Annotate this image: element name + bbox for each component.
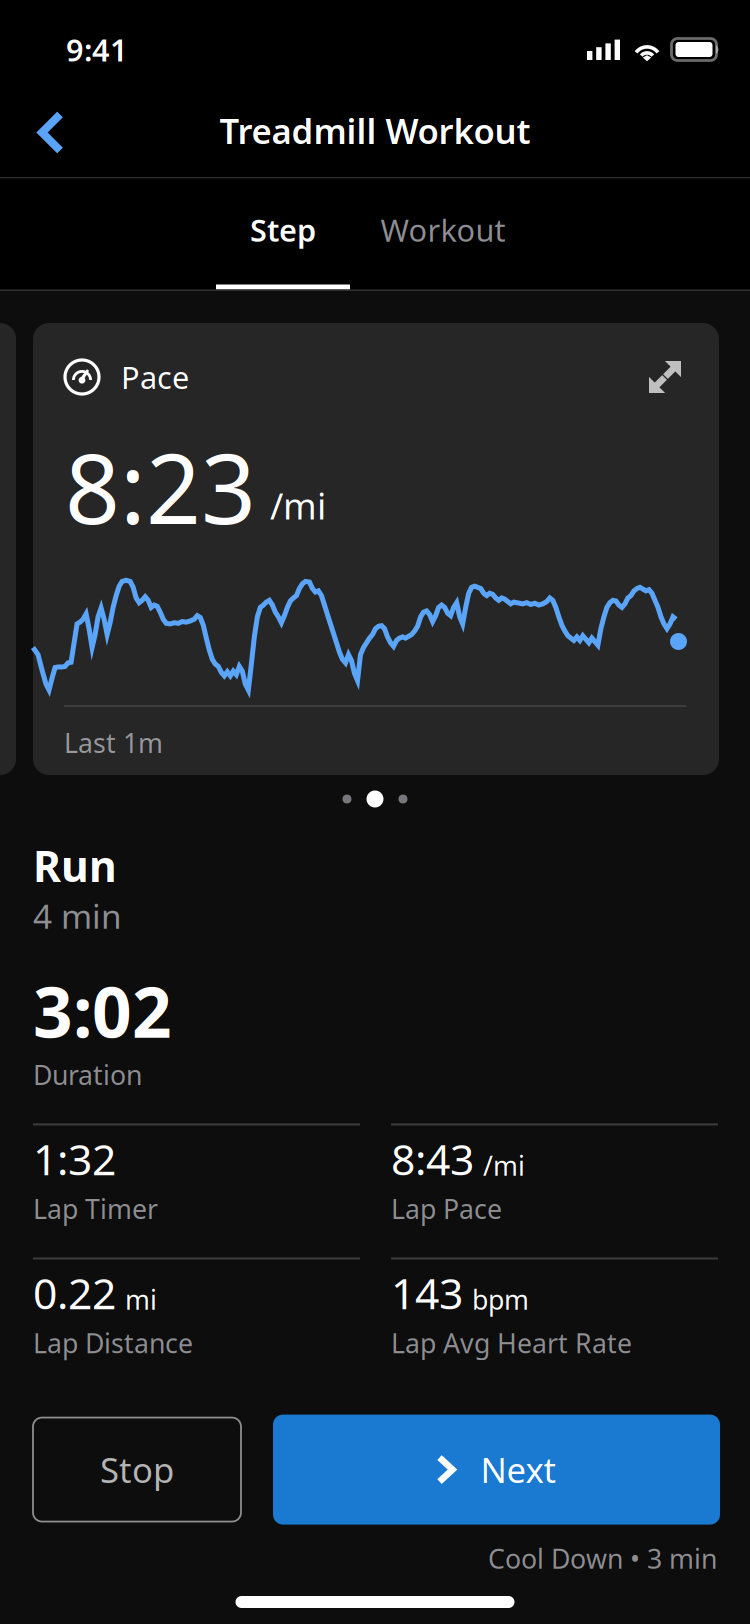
staticText: /mi <box>483 1148 525 1183</box>
staticText: Lap Distance <box>33 1325 193 1360</box>
staticText: 3:02 <box>33 965 172 1057</box>
staticText: 0.22 <box>33 1264 116 1321</box>
staticText: /mi <box>270 482 326 529</box>
staticText: Cool Down • 3 min <box>488 1541 717 1576</box>
staticText: Last 1m <box>64 725 163 760</box>
staticText: Stop <box>100 1447 174 1493</box>
button[interactable]: Back <box>22 103 80 167</box>
staticText: 9:41 <box>66 29 128 70</box>
staticText: 143 <box>391 1264 463 1321</box>
button[interactable]: Next <box>273 1415 720 1525</box>
staticText: Run <box>33 837 117 894</box>
staticText: 8:43 <box>391 1130 474 1187</box>
button[interactable]: Stop <box>33 1418 241 1522</box>
button[interactable]: Expand <box>649 355 689 399</box>
staticText: mi <box>125 1282 157 1317</box>
staticText: 8:23 <box>65 423 256 550</box>
staticText: Workout <box>380 209 505 250</box>
staticText: Lap Pace <box>391 1191 502 1226</box>
staticText: 1:32 <box>33 1130 116 1187</box>
staticText: bpm <box>472 1282 529 1317</box>
staticText: Next <box>480 1447 556 1493</box>
button[interactable]: Workout <box>376 178 510 289</box>
staticText: Lap Avg Heart Rate <box>391 1325 632 1360</box>
staticText: 4 min <box>33 894 122 938</box>
staticText: Treadmill Workout <box>219 107 530 153</box>
staticText: Duration <box>33 1057 142 1092</box>
staticText: Lap Timer <box>33 1191 158 1226</box>
staticText: Pace <box>121 357 189 397</box>
button[interactable]: Step <box>216 178 350 289</box>
staticText: Step <box>250 209 316 250</box>
